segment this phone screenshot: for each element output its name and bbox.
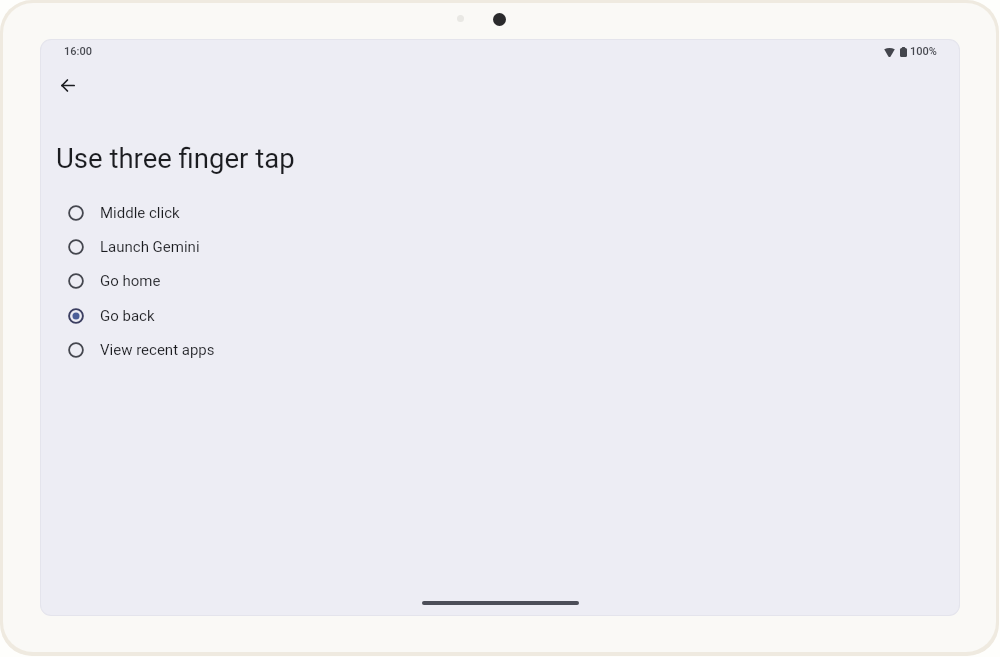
- staticText: Middle click: [100, 204, 180, 222]
- button[interactable]: Go home: [41, 264, 959, 298]
- staticText: View recent apps: [100, 341, 215, 359]
- staticText: 100%: [910, 45, 937, 58]
- staticText: 16:00: [64, 45, 92, 58]
- staticText: Use three finger tap: [56, 142, 295, 174]
- staticText: Go back: [100, 307, 155, 325]
- button[interactable]: Launch Gemini: [41, 230, 959, 264]
- button[interactable]: Navigate up: [48, 65, 88, 105]
- button[interactable]: View recent apps: [41, 333, 959, 367]
- staticText: Go home: [100, 272, 161, 290]
- staticText: Launch Gemini: [100, 238, 200, 256]
- button[interactable]: Middle click: [41, 196, 959, 230]
- button[interactable]: Go back: [41, 299, 959, 333]
